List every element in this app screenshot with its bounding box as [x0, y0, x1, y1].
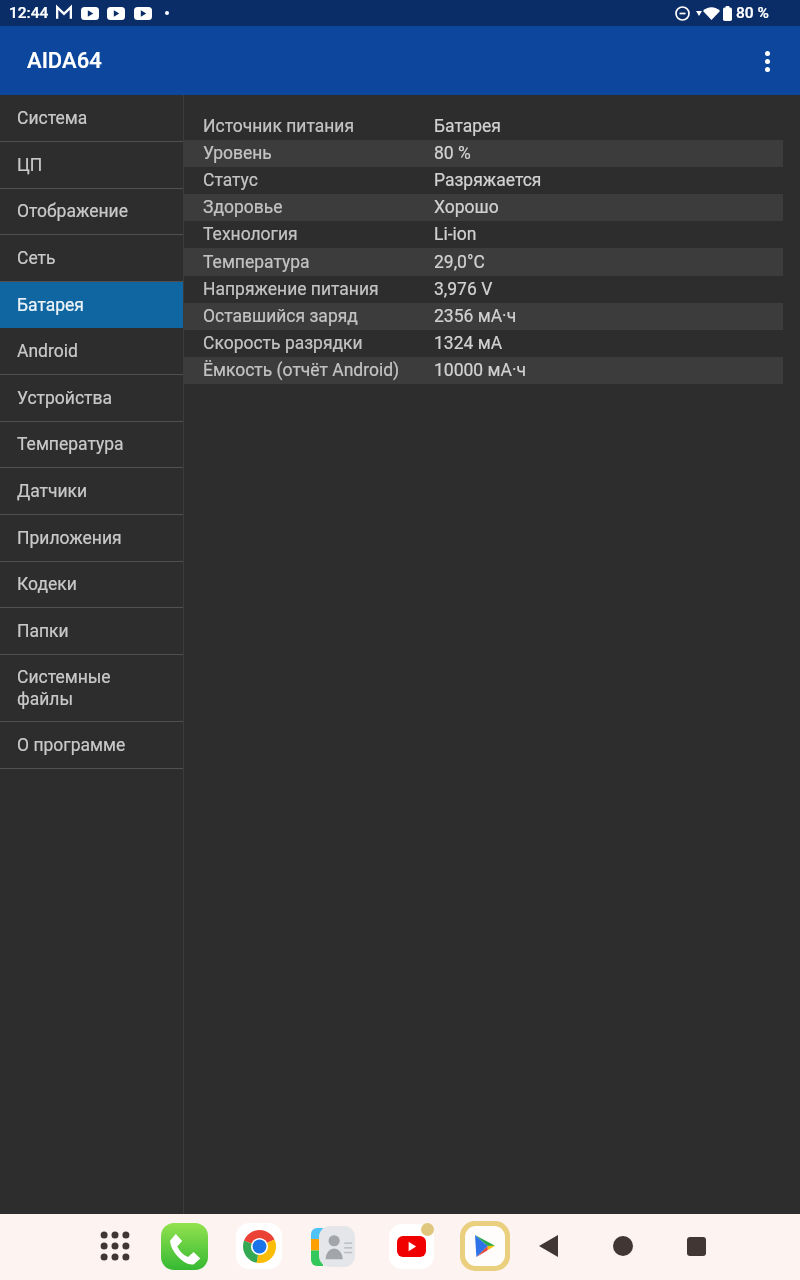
- staticText: Устройства: [17, 388, 113, 409]
- staticText: 1324 мА: [434, 333, 503, 354]
- button[interactable]: Кодеки: [0, 562, 184, 607]
- button[interactable]: Система: [0, 95, 184, 141]
- staticText: Ёмкость (отчёт Android): [203, 360, 434, 381]
- staticText: 2356 мА·ч: [434, 306, 517, 327]
- staticText: Разряжается: [434, 170, 542, 191]
- button[interactable]: Phone: [158, 1220, 210, 1272]
- button[interactable]: Сеть: [0, 235, 184, 281]
- staticText: Технология: [203, 224, 434, 245]
- staticText: Температура: [17, 434, 124, 455]
- staticText: Температура: [203, 252, 434, 273]
- staticText: Напряжение питания: [203, 279, 434, 300]
- button[interactable]: Отображение: [0, 189, 184, 234]
- staticText: Скорость разрядки: [203, 333, 434, 354]
- button[interactable]: Статус: [184, 167, 783, 194]
- button[interactable]: YouTube: [385, 1220, 437, 1272]
- staticText: Li-ion: [434, 224, 477, 245]
- button[interactable]: All apps: [89, 1220, 141, 1272]
- button[interactable]: ЦП: [0, 142, 184, 188]
- button[interactable]: Оставшийся заряд: [184, 303, 783, 330]
- button[interactable]: Home: [597, 1220, 649, 1272]
- button[interactable]: More options: [747, 41, 787, 81]
- staticText: 3,976 V: [434, 279, 493, 300]
- button[interactable]: Системные файлы: [0, 655, 184, 721]
- staticText: 10000 мА·ч: [434, 360, 527, 381]
- staticText: 80 %: [736, 4, 769, 22]
- staticText: ЦП: [17, 155, 43, 176]
- staticText: Уровень: [203, 143, 434, 164]
- button[interactable]: Android: [0, 329, 184, 374]
- staticText: Сеть: [17, 248, 56, 269]
- staticText: Батарея: [434, 116, 501, 137]
- button[interactable]: Датчики: [0, 468, 184, 514]
- button[interactable]: Chrome: [233, 1220, 285, 1272]
- button[interactable]: Источник питания: [184, 112, 783, 140]
- button[interactable]: Папки: [0, 608, 184, 654]
- staticText: AIDA64: [27, 48, 102, 74]
- staticText: 80 %: [434, 143, 471, 164]
- staticText: Статус: [203, 170, 434, 191]
- staticText: Система: [17, 108, 88, 129]
- button[interactable]: Уровень: [184, 140, 783, 167]
- button[interactable]: Температура: [184, 248, 783, 276]
- button[interactable]: Напряжение питания: [184, 276, 783, 303]
- button[interactable]: Батарея: [0, 282, 184, 328]
- staticText: Батарея: [17, 295, 84, 316]
- button[interactable]: Приложения: [0, 515, 184, 561]
- staticText: 12:44: [9, 4, 49, 22]
- staticText: О программе: [17, 735, 126, 756]
- button[interactable]: Back: [522, 1220, 574, 1272]
- button[interactable]: Устройства: [0, 375, 184, 421]
- staticText: Кодеки: [17, 574, 77, 595]
- button[interactable]: Recents: [670, 1220, 722, 1272]
- staticText: 29,0°C: [434, 252, 485, 273]
- staticText: Папки: [17, 621, 69, 642]
- staticText: Источник питания: [203, 116, 434, 137]
- button[interactable]: О программе: [0, 722, 184, 768]
- staticText: Здоровье: [203, 197, 434, 218]
- button[interactable]: Технология: [184, 221, 783, 248]
- button[interactable]: Ёмкость (отчёт Android): [184, 357, 783, 384]
- button[interactable]: Температура: [0, 422, 184, 467]
- staticText: Приложения: [17, 528, 122, 549]
- button[interactable]: Play Store: [459, 1220, 511, 1272]
- staticText: Хорошо: [434, 197, 499, 218]
- staticText: Android: [17, 341, 78, 362]
- staticText: Датчики: [17, 481, 88, 502]
- button[interactable]: Здоровье: [184, 194, 783, 221]
- button[interactable]: Скорость разрядки: [184, 330, 783, 357]
- staticText: Системные файлы: [17, 667, 170, 710]
- button[interactable]: Contacts: [307, 1220, 359, 1272]
- staticText: Отображение: [17, 201, 128, 222]
- staticText: Оставшийся заряд: [203, 306, 434, 327]
